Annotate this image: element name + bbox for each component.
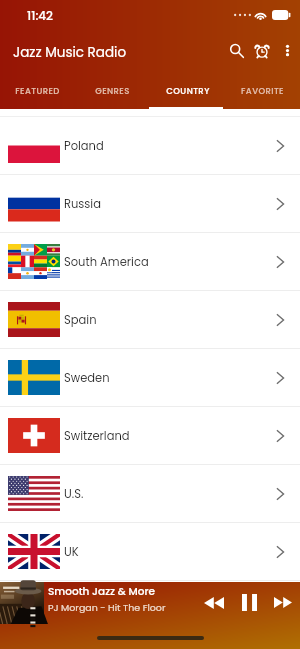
staticText: Poland [64, 138, 104, 154]
button[interactable]: Spain [0, 291, 300, 349]
button[interactable]: UK [0, 523, 300, 581]
staticText: GENRES [95, 85, 130, 97]
staticText: COUNTRY [166, 85, 210, 97]
button[interactable]: U.S. [0, 465, 300, 523]
staticText: PJ Morgan - Hit The Floor [48, 601, 166, 614]
staticText: South America [64, 254, 149, 270]
staticText: Jazz Music Radio [13, 43, 127, 62]
button[interactable]: Search [224, 38, 250, 64]
button[interactable]: Russia [0, 175, 300, 233]
button[interactable]: Rewind [197, 586, 230, 619]
button[interactable]: South America [0, 233, 300, 291]
button[interactable]: Switzerland [0, 407, 300, 465]
button[interactable]: FAVORITE [225, 74, 300, 109]
staticText: Sweden [64, 370, 110, 386]
staticText: Russia [64, 196, 101, 212]
button[interactable]: Alarm [249, 38, 275, 64]
staticText: UK [64, 544, 79, 560]
staticText: FEATURED [15, 85, 60, 97]
staticText: Smooth Jazz & More [48, 584, 155, 599]
staticText: Spain [64, 312, 97, 328]
staticText: Switzerland [64, 428, 130, 444]
button[interactable]: Poland [0, 117, 300, 175]
button[interactable]: Sweden [0, 349, 300, 407]
button[interactable]: Pause [233, 586, 266, 619]
button[interactable]: GENRES [75, 74, 150, 109]
staticText: FAVORITE [241, 85, 284, 97]
button[interactable]: FEATURED [0, 74, 75, 109]
button[interactable]: More options [275, 38, 299, 62]
button[interactable]: Fast forward [266, 586, 299, 619]
staticText: 11:42 [27, 7, 54, 24]
staticText: U.S. [64, 486, 84, 502]
button[interactable]: COUNTRY [150, 74, 225, 109]
